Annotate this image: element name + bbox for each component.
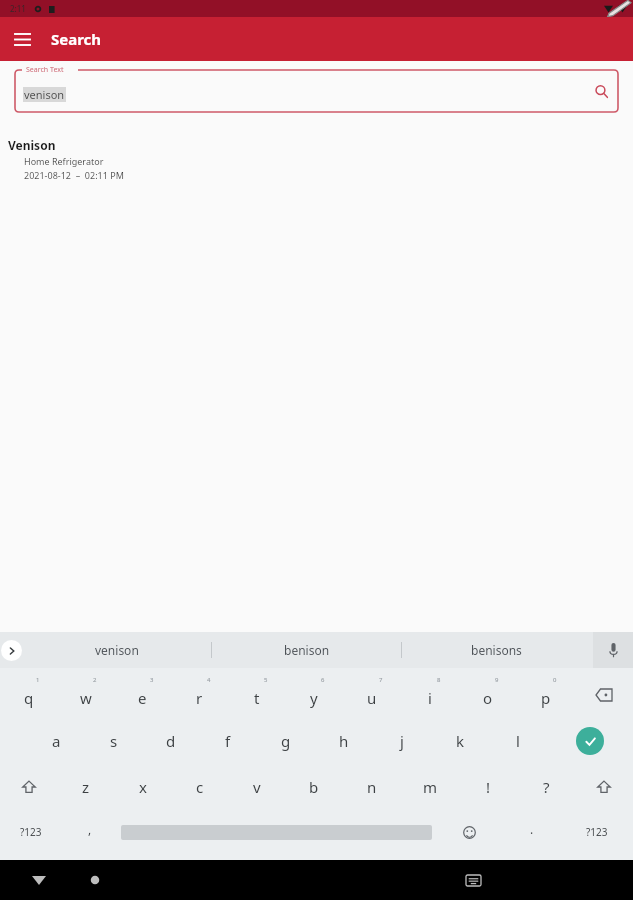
- button[interactable]: Done: [576, 727, 604, 755]
- staticText: benisons: [471, 642, 522, 658]
- staticText: .: [530, 821, 534, 837]
- button[interactable]: Open navigation menu: [7, 24, 37, 54]
- staticText: 3: [150, 676, 154, 684]
- button[interactable]: Voice input: [593, 632, 633, 668]
- staticText: u: [367, 688, 377, 708]
- staticText: i: [428, 688, 432, 708]
- staticText: 2:11: [10, 3, 26, 14]
- staticText: h: [339, 731, 349, 751]
- button[interactable]: q: [0, 672, 57, 718]
- staticText: e: [138, 688, 147, 708]
- button[interactable]: Shift: [0, 764, 57, 810]
- button[interactable]: a: [28, 718, 85, 764]
- button[interactable]: venison: [22, 632, 211, 668]
- button[interactable]: Home: [80, 865, 110, 895]
- button[interactable]: j: [373, 718, 431, 764]
- staticText: 6: [321, 676, 325, 684]
- staticText: 7: [379, 676, 383, 684]
- staticText: j: [400, 731, 404, 751]
- button[interactable]: l: [489, 718, 547, 764]
- staticText: p: [541, 688, 551, 708]
- staticText: benison: [284, 642, 330, 658]
- button[interactable]: .: [503, 810, 560, 854]
- staticText: ?123: [586, 825, 608, 839]
- button[interactable]: c: [171, 764, 228, 810]
- staticText: Search Text: [26, 65, 64, 75]
- staticText: 8: [437, 676, 441, 684]
- staticText: Home Refrigerator: [24, 155, 104, 167]
- button[interactable]: m: [401, 764, 459, 810]
- button[interactable]: y: [285, 672, 343, 718]
- button[interactable]: ?123: [560, 810, 633, 854]
- staticText: 4: [207, 676, 211, 684]
- button[interactable]: s: [85, 718, 142, 764]
- staticText: !: [486, 777, 491, 797]
- staticText: o: [483, 688, 493, 708]
- staticText: venison: [24, 87, 65, 102]
- button[interactable]: o: [459, 672, 517, 718]
- button[interactable]: z: [57, 764, 114, 810]
- staticText: a: [52, 731, 61, 751]
- staticText: z: [82, 777, 90, 797]
- staticText: c: [196, 777, 204, 797]
- staticText: 5: [264, 676, 268, 684]
- button[interactable]: benison: [212, 632, 401, 668]
- button[interactable]: ?123: [0, 810, 61, 854]
- button[interactable]: n: [343, 764, 401, 810]
- button[interactable]: r: [171, 672, 228, 718]
- staticText: s: [110, 731, 118, 751]
- button[interactable]: Hide keyboard: [24, 865, 54, 895]
- button[interactable]: g: [257, 718, 315, 764]
- button[interactable]: !: [459, 764, 517, 810]
- staticText: t: [254, 688, 260, 708]
- button[interactable]: i: [401, 672, 459, 718]
- button[interactable]: x: [114, 764, 171, 810]
- staticText: 1: [36, 676, 40, 684]
- staticText: f: [225, 731, 231, 751]
- button[interactable]: Search Text: [14, 69, 619, 113]
- button[interactable]: Switch keyboard: [458, 865, 488, 895]
- button[interactable]: benisons: [402, 632, 591, 668]
- staticText: r: [196, 688, 203, 708]
- staticText: q: [24, 688, 34, 708]
- button[interactable]: f: [199, 718, 257, 764]
- staticText: 2: [93, 676, 97, 684]
- button[interactable]: e: [114, 672, 171, 718]
- staticText: ?123: [20, 825, 42, 839]
- staticText: Search: [51, 29, 102, 49]
- button[interactable]: w: [57, 672, 114, 718]
- staticText: k: [456, 731, 465, 751]
- button[interactable]: Venison: [0, 135, 633, 185]
- button[interactable]: d: [142, 718, 199, 764]
- button[interactable]: u: [343, 672, 401, 718]
- button[interactable]: More suggestions: [1, 640, 22, 661]
- staticText: venison: [95, 642, 139, 658]
- button[interactable]: p: [517, 672, 575, 718]
- staticText: m: [423, 777, 438, 797]
- button[interactable]: v: [228, 764, 285, 810]
- staticText: d: [166, 731, 176, 751]
- staticText: g: [281, 731, 291, 751]
- staticText: b: [309, 777, 319, 797]
- button[interactable]: k: [431, 718, 489, 764]
- staticText: 9: [495, 676, 499, 684]
- staticText: l: [516, 731, 520, 751]
- button[interactable]: Space: [118, 810, 435, 854]
- staticText: x: [139, 777, 147, 797]
- button[interactable]: ,: [61, 810, 118, 854]
- button[interactable]: t: [228, 672, 285, 718]
- button[interactable]: Shift: [575, 764, 633, 810]
- staticText: 2021-08-12 – 02:11 PM: [24, 169, 124, 181]
- staticText: n: [367, 777, 377, 797]
- button[interactable]: ?: [517, 764, 575, 810]
- staticText: ?: [543, 777, 550, 797]
- button[interactable]: b: [285, 764, 343, 810]
- button[interactable]: Search: [588, 78, 614, 104]
- button[interactable]: Backspace: [575, 672, 633, 718]
- staticText: w: [80, 688, 92, 708]
- staticText: v: [253, 777, 261, 797]
- staticText: 0: [553, 676, 557, 684]
- button[interactable]: Emoji: [435, 810, 503, 854]
- staticText: ,: [88, 821, 92, 837]
- button[interactable]: h: [315, 718, 373, 764]
